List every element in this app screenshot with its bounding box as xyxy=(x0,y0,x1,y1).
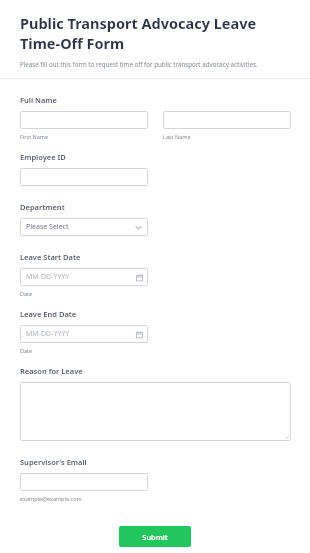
button[interactable]: Submit xyxy=(119,526,191,547)
staticText: Please Select xyxy=(26,222,69,232)
staticText: Submit xyxy=(142,532,168,542)
staticText: Full Name xyxy=(20,95,57,105)
button[interactable]: Leave End Date xyxy=(20,325,148,343)
button[interactable]: Supervisor's Email xyxy=(20,473,148,491)
staticText: Employee ID xyxy=(20,152,66,162)
staticText: First Name xyxy=(20,133,49,140)
staticText: Date xyxy=(20,347,33,354)
button[interactable]: Reason for Leave xyxy=(20,382,291,441)
button[interactable]: First Name xyxy=(20,111,148,129)
button[interactable]: Leave Start Date xyxy=(20,268,148,286)
staticText: Reason for Leave xyxy=(20,366,83,376)
staticText: Leave Start Date xyxy=(20,252,81,262)
button[interactable]: Last Name xyxy=(163,111,291,129)
staticText: Public Transport Advocacy Leave Time-Off… xyxy=(20,13,290,53)
staticText: Last Name xyxy=(163,133,191,140)
staticText: example@example.com xyxy=(20,495,82,502)
button[interactable]: Employee ID xyxy=(20,168,148,186)
staticText: Supervisor's Email xyxy=(20,457,87,467)
staticText: MM-DD-YYYY xyxy=(26,329,70,339)
staticText: Leave End Date xyxy=(20,309,77,319)
button[interactable]: Please Select xyxy=(20,218,148,236)
staticText: Please fill out this form to request tim… xyxy=(20,60,258,68)
staticText: MM-DD-YYYY xyxy=(26,272,70,282)
staticText: Date xyxy=(20,290,33,297)
staticText: Department xyxy=(20,202,65,212)
